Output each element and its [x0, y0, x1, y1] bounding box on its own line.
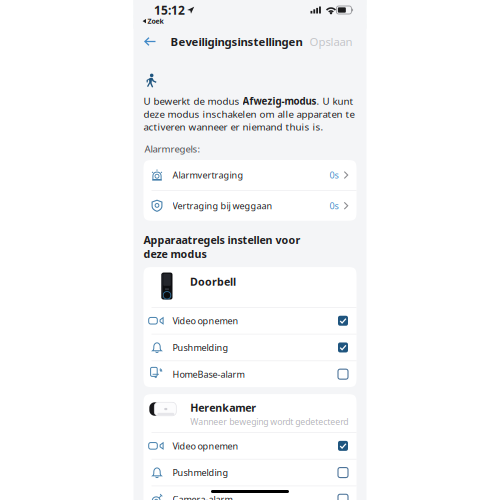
- staticText: Beveiligingsinstellingen: [170, 34, 302, 49]
- button[interactable]: HomeBase-alarm: [143, 361, 356, 387]
- button[interactable]: Opslaan: [309, 34, 352, 49]
- button[interactable]: Pushmelding: [143, 460, 356, 486]
- button[interactable]: Video opnemen: [143, 308, 356, 334]
- button[interactable]: Pushmelding: [143, 334, 356, 360]
- staticText: Video opnemen: [172, 440, 238, 452]
- staticText: U bewerkt de modus Afwezig-modus. U kunt…: [143, 94, 354, 133]
- staticText: Doorbell: [190, 275, 236, 289]
- button[interactable]: Terug: [138, 31, 160, 52]
- staticText: HomeBase-alarm: [172, 368, 244, 380]
- staticText: Wanneer beweging wordt gedetecteerd: [190, 416, 348, 427]
- staticText: Zoek: [147, 16, 163, 26]
- staticText: Camera-alarm: [172, 493, 232, 500]
- button[interactable]: Vertraging bij weggaan: [143, 191, 356, 221]
- staticText: Pushmelding: [172, 466, 228, 478]
- staticText: Herenkamer: [190, 400, 256, 415]
- staticText: 0s: [329, 200, 338, 212]
- staticText: Alarmvertraging: [172, 169, 243, 181]
- staticText: Video opnemen: [172, 315, 238, 327]
- staticText: Opslaan: [309, 34, 352, 49]
- staticText: Vertraging bij weggaan: [172, 200, 272, 212]
- staticText: Apparaatregels instellen voor deze modus: [143, 233, 300, 261]
- button[interactable]: Camera-alarm: [143, 486, 356, 500]
- staticText: 0s: [329, 169, 338, 181]
- staticText: 15:12: [154, 2, 185, 18]
- button[interactable]: Video opnemen: [143, 433, 356, 459]
- staticText: Pushmelding: [172, 341, 228, 353]
- button[interactable]: Alarmvertraging: [143, 160, 356, 190]
- staticText: Alarmregels:: [144, 142, 200, 155]
